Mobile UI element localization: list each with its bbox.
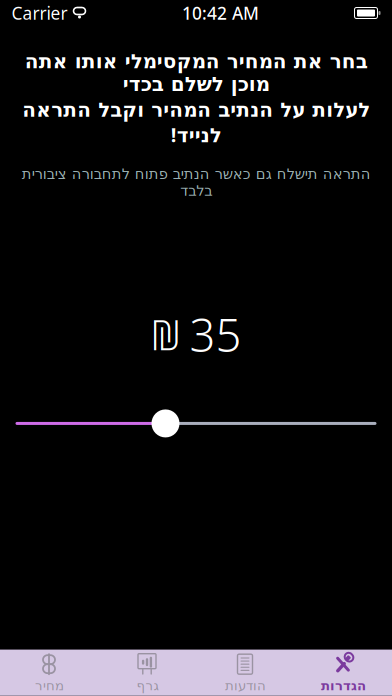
button[interactable]: מחיר bbox=[0, 650, 98, 696]
staticText: התראה תישלח גם כאשר הנתיב פתוח לתחבורה צ… bbox=[21, 166, 370, 199]
button[interactable]: הודעות bbox=[196, 650, 294, 696]
button[interactable]: הגדרות bbox=[294, 650, 392, 696]
staticText: 35 bbox=[189, 304, 241, 364]
staticText: ₪ bbox=[150, 307, 180, 362]
staticText: Carrier bbox=[11, 1, 67, 24]
staticText: לעלות על הנתיב המהיר וקבל התראה לנייד! bbox=[22, 98, 370, 148]
staticText: בחר את המחיר המקסימלי אותו אתה מוכן לשלם… bbox=[24, 50, 367, 95]
button[interactable]: גרף bbox=[98, 650, 196, 696]
staticText: מחיר bbox=[34, 678, 63, 693]
staticText: הודעות bbox=[224, 678, 265, 693]
staticText: הגדרות bbox=[320, 678, 365, 693]
staticText: 10:42 AM bbox=[182, 1, 259, 24]
staticText: גרף bbox=[136, 678, 158, 693]
